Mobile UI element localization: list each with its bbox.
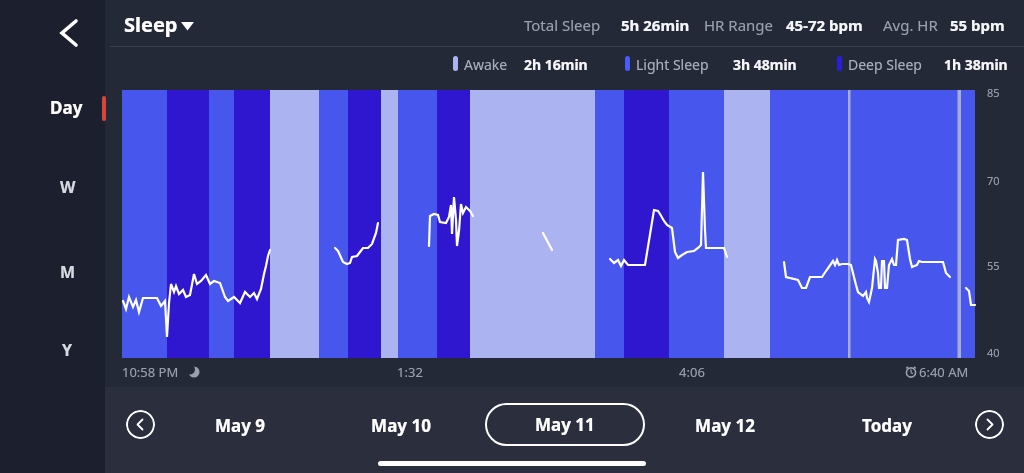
button[interactable] [52, 15, 88, 55]
staticText: 1:32 [370, 363, 450, 381]
staticText: Avg. HR [883, 15, 938, 35]
staticText: M [60, 261, 76, 283]
staticText: 85 [987, 85, 1000, 100]
staticText: Y [62, 339, 73, 361]
staticText: 2h 16min [524, 55, 588, 74]
staticText: Awake [464, 55, 508, 74]
staticText: 45-72 bpm [786, 15, 863, 35]
staticText: 55 bpm [950, 15, 1005, 35]
staticText: 70 [987, 173, 1000, 188]
button[interactable]: Day [30, 92, 105, 126]
button[interactable]: Today [837, 408, 937, 440]
staticText: May 11 [535, 413, 595, 436]
button[interactable]: May 9 [190, 408, 290, 440]
staticText: Day [50, 96, 83, 119]
staticText: Today [837, 414, 937, 437]
button[interactable]: Sleep [124, 11, 204, 39]
staticText: Deep Sleep [848, 55, 922, 74]
button[interactable]: W [40, 172, 96, 204]
button[interactable] [126, 410, 155, 439]
staticText: May 9 [190, 414, 290, 437]
staticText: Light Sleep [636, 55, 709, 74]
button[interactable]: May 10 [351, 408, 451, 440]
button[interactable]: M [40, 257, 96, 289]
staticText: HR Range [704, 15, 774, 35]
staticText: May 12 [675, 414, 775, 437]
button[interactable] [975, 410, 1004, 439]
staticText: 4:06 [652, 363, 732, 381]
staticText: Sleep [124, 11, 178, 38]
staticText: 10:58 PM [122, 363, 179, 381]
staticText: 1h 38min [944, 55, 1008, 74]
button[interactable]: Y [40, 335, 96, 367]
staticText: 40 [987, 345, 1000, 360]
staticText: 3h 48min [733, 55, 797, 74]
staticText: 6:40 AM [919, 363, 969, 381]
staticText: 5h 26min [621, 15, 690, 35]
staticText: Total Sleep [524, 15, 601, 35]
staticText: W [60, 176, 76, 198]
staticText: May 10 [351, 414, 451, 437]
button[interactable]: May 12 [675, 408, 775, 440]
staticText: 55 [987, 258, 1000, 273]
button[interactable]: May 11 [485, 403, 645, 446]
